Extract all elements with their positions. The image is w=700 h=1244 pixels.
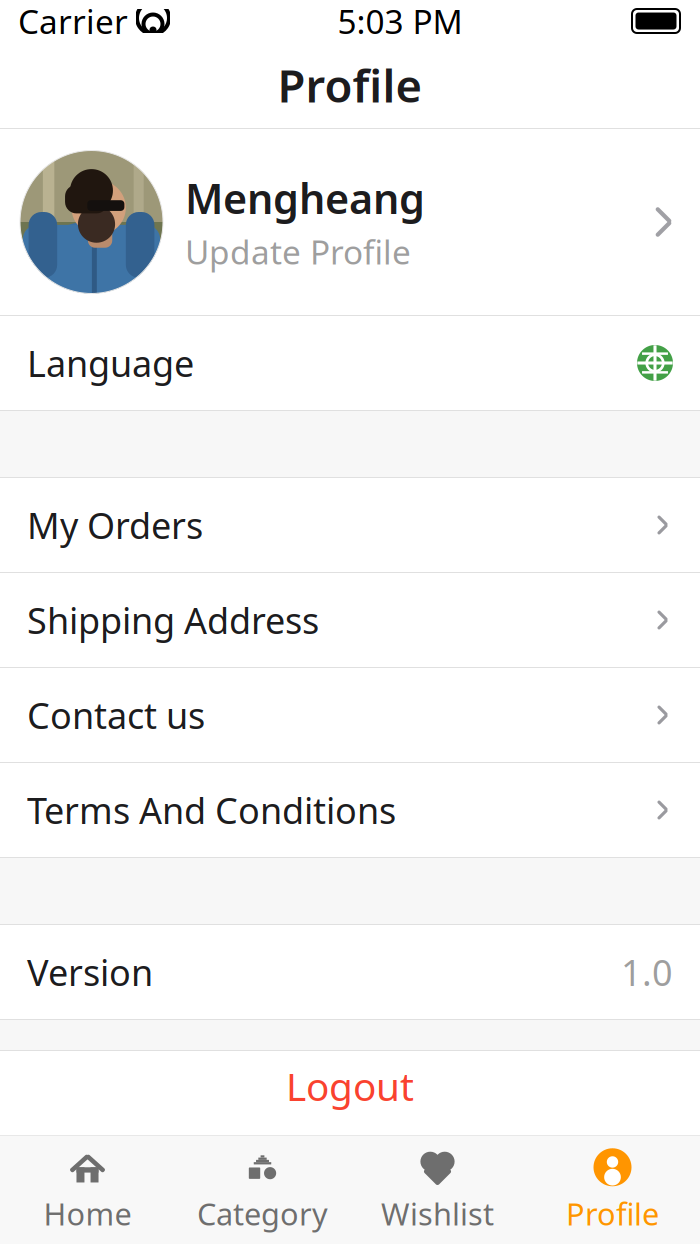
button[interactable]: Language: [0, 316, 700, 410]
staticText: Update Profile: [185, 229, 411, 274]
staticText: Mengheang: [185, 170, 425, 225]
staticText: My Orders: [27, 501, 203, 549]
button[interactable]: Category: [175, 1136, 350, 1244]
button[interactable]: Shipping Address: [0, 573, 700, 668]
staticText: Profile: [566, 1193, 659, 1234]
button[interactable]: Terms And Conditions: [0, 763, 700, 857]
button[interactable]: Logout: [0, 1051, 700, 1121]
button[interactable]: Mengheang: [0, 129, 700, 316]
staticText: Category: [197, 1193, 328, 1234]
staticText: Language: [27, 339, 194, 387]
staticText: Shipping Address: [27, 596, 319, 644]
button[interactable]: Profile: [525, 1136, 700, 1244]
staticText: Terms And Conditions: [27, 786, 396, 834]
staticText: Version: [27, 948, 153, 996]
staticText: 5:03 PM: [337, 0, 462, 43]
staticText: 1.0: [621, 948, 673, 996]
staticText: Home: [43, 1193, 131, 1234]
button[interactable]: Contact us: [0, 668, 700, 763]
button[interactable]: My Orders: [0, 478, 700, 573]
button[interactable]: Home: [0, 1136, 175, 1244]
staticText: Wishlist: [381, 1193, 494, 1234]
button[interactable]: Wishlist: [350, 1136, 525, 1244]
staticText: Logout: [286, 1060, 414, 1112]
staticText: Profile: [277, 55, 422, 115]
staticText: Contact us: [27, 691, 205, 739]
staticText: Carrier: [18, 0, 128, 43]
